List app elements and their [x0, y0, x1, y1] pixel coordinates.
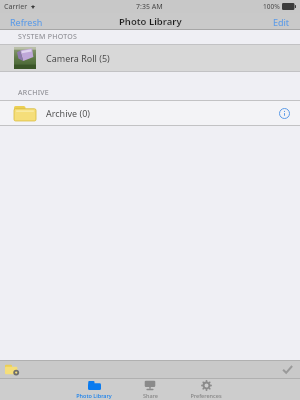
- button[interactable]: Done: [279, 361, 295, 377]
- staticText: Camera Roll (5): [46, 52, 110, 64]
- staticText: 7:35 AM: [136, 2, 163, 12]
- button[interactable]: Photo Library: [66, 378, 122, 400]
- staticText: Archive (0): [46, 107, 91, 119]
- staticText: Preferences: [190, 392, 222, 399]
- staticText: Refresh: [10, 16, 43, 28]
- staticText: SYSTEM PHOTOS: [18, 32, 78, 42]
- button[interactable]: Archive (0): [0, 101, 300, 125]
- staticText: Photo Library: [119, 15, 182, 28]
- button[interactable]: Preferences: [178, 378, 234, 400]
- button[interactable]: Refresh: [6, 14, 47, 30]
- staticText: Edit: [273, 16, 290, 28]
- button[interactable]: More info: [276, 105, 292, 121]
- staticText: Carrier: [4, 2, 28, 12]
- staticText: Photo Library: [76, 392, 112, 399]
- button[interactable]: Camera Roll (5): [0, 45, 300, 71]
- button[interactable]: New folder: [4, 361, 20, 377]
- staticText: Share: [143, 392, 158, 399]
- button[interactable]: Edit: [269, 14, 294, 30]
- staticText: ARCHIVE: [18, 88, 50, 98]
- staticText: 100%: [263, 2, 280, 11]
- button[interactable]: Share: [122, 378, 178, 400]
